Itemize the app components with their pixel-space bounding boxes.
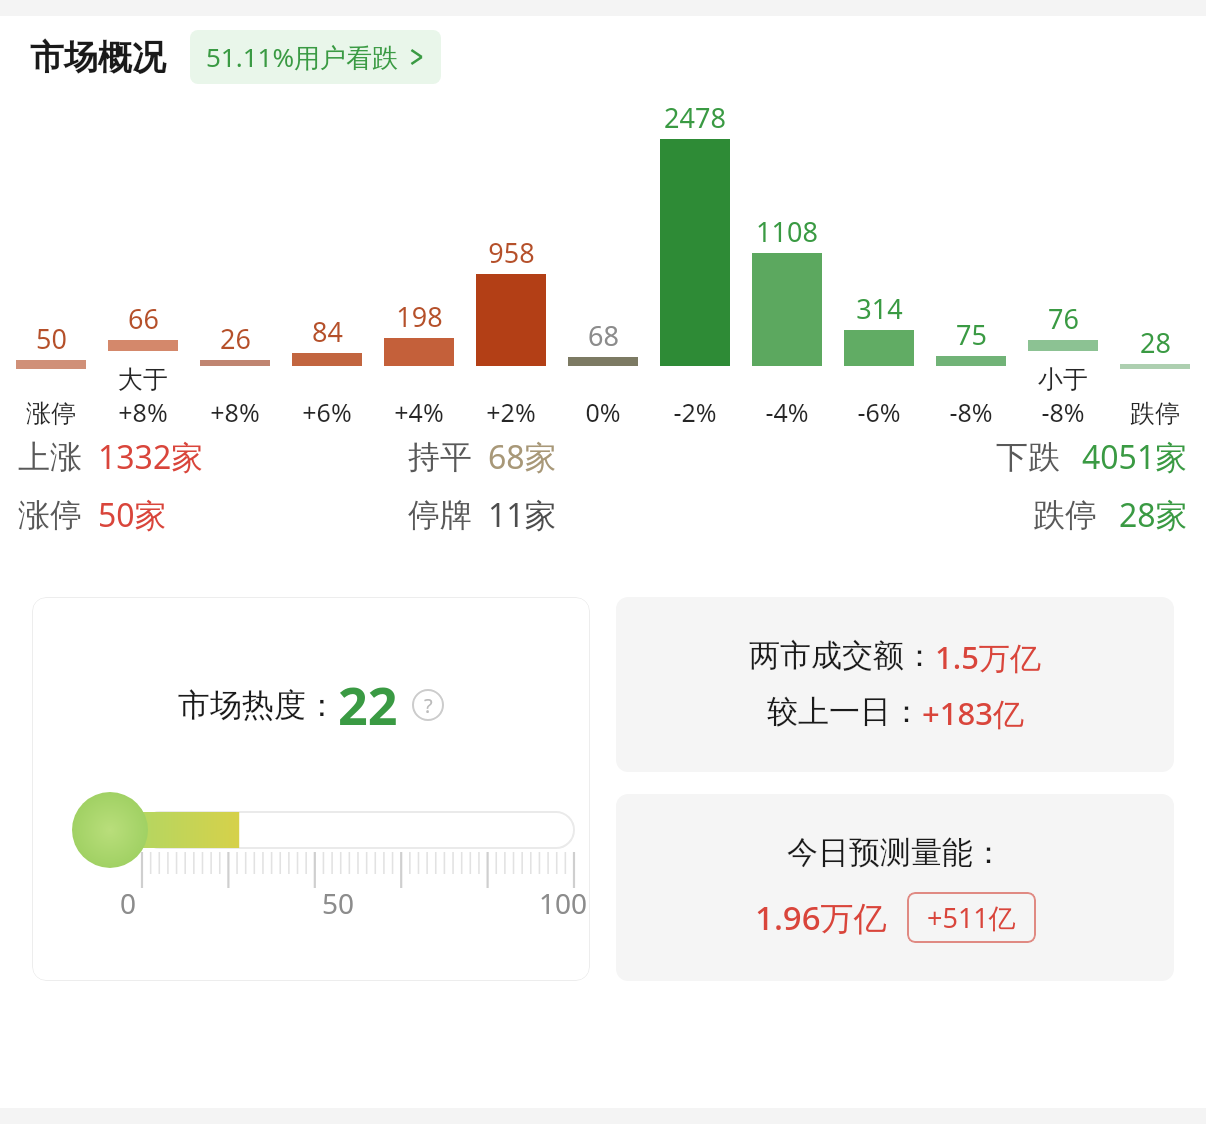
staticText: 两市成交额： bbox=[749, 636, 935, 675]
staticText: 大于 bbox=[118, 364, 168, 395]
staticText: -8% bbox=[949, 395, 993, 429]
staticText: 75 bbox=[956, 316, 987, 353]
button[interactable]: 两市成交额： bbox=[616, 597, 1174, 772]
staticText: 1108 bbox=[756, 213, 818, 250]
staticText: 停牌 bbox=[408, 495, 472, 535]
staticText: 2478 bbox=[664, 99, 726, 136]
staticText: 0 bbox=[120, 884, 137, 922]
staticText: +6% bbox=[302, 395, 352, 429]
staticText: 50 bbox=[322, 884, 355, 922]
staticText: 涨停 bbox=[18, 495, 82, 535]
staticText: 市场热度： bbox=[178, 685, 338, 725]
staticText: +4% bbox=[394, 395, 444, 429]
staticText: 51.11%用户看跌 bbox=[206, 39, 399, 75]
staticText: -8% bbox=[1041, 395, 1085, 429]
staticText: -4% bbox=[765, 395, 809, 429]
staticText: 跌停 bbox=[1033, 495, 1097, 535]
staticText: 跌停 bbox=[1130, 398, 1180, 429]
staticText: 11家 bbox=[488, 493, 557, 537]
staticText: +2% bbox=[486, 395, 536, 429]
staticText: 100 bbox=[539, 884, 588, 922]
button[interactable]: 市场热度： bbox=[32, 597, 590, 981]
staticText: 1332家 bbox=[98, 435, 204, 479]
staticText: 68家 bbox=[488, 435, 557, 479]
staticText: 今日预测量能： bbox=[787, 833, 1004, 872]
staticText: 小于 bbox=[1038, 364, 1088, 395]
button[interactable]: 帮助 bbox=[412, 689, 444, 721]
staticText: 198 bbox=[396, 298, 443, 335]
staticText: 50 bbox=[36, 320, 67, 357]
staticText: 50家 bbox=[98, 493, 167, 537]
staticText: 76 bbox=[1048, 300, 1079, 337]
staticText: 958 bbox=[488, 234, 535, 271]
staticText: 4051家 bbox=[1082, 435, 1188, 479]
staticText: 28家 bbox=[1119, 493, 1188, 537]
staticText: 314 bbox=[856, 290, 903, 327]
staticText: 1.5万亿 bbox=[935, 636, 1041, 678]
staticText: +511亿 bbox=[927, 899, 1016, 936]
staticText: +8% bbox=[210, 395, 260, 429]
staticText: 持平 bbox=[408, 437, 472, 477]
staticText: +8% bbox=[118, 395, 168, 429]
staticText: 较上一日： bbox=[767, 692, 922, 731]
staticText: 84 bbox=[312, 313, 343, 350]
staticText: 66 bbox=[128, 300, 159, 337]
staticText: 28 bbox=[1140, 324, 1171, 361]
staticText: 68 bbox=[588, 317, 619, 354]
staticText: 0% bbox=[585, 395, 621, 429]
button[interactable]: 今日预测量能： bbox=[616, 794, 1174, 981]
button[interactable]: 51.11%用户看跌 bbox=[190, 30, 441, 84]
staticText: 市场概况 bbox=[30, 36, 166, 79]
staticText: +183亿 bbox=[922, 692, 1024, 734]
staticText: 上涨 bbox=[18, 437, 82, 477]
staticText: ? bbox=[424, 692, 433, 719]
staticText: 下跌 bbox=[996, 437, 1060, 477]
staticText: -6% bbox=[857, 395, 901, 429]
staticText: 26 bbox=[220, 320, 251, 357]
staticText: 涨停 bbox=[26, 398, 76, 429]
staticText: 22 bbox=[338, 669, 398, 740]
staticText: -2% bbox=[673, 395, 717, 429]
staticText: 1.96万亿 bbox=[755, 895, 887, 940]
